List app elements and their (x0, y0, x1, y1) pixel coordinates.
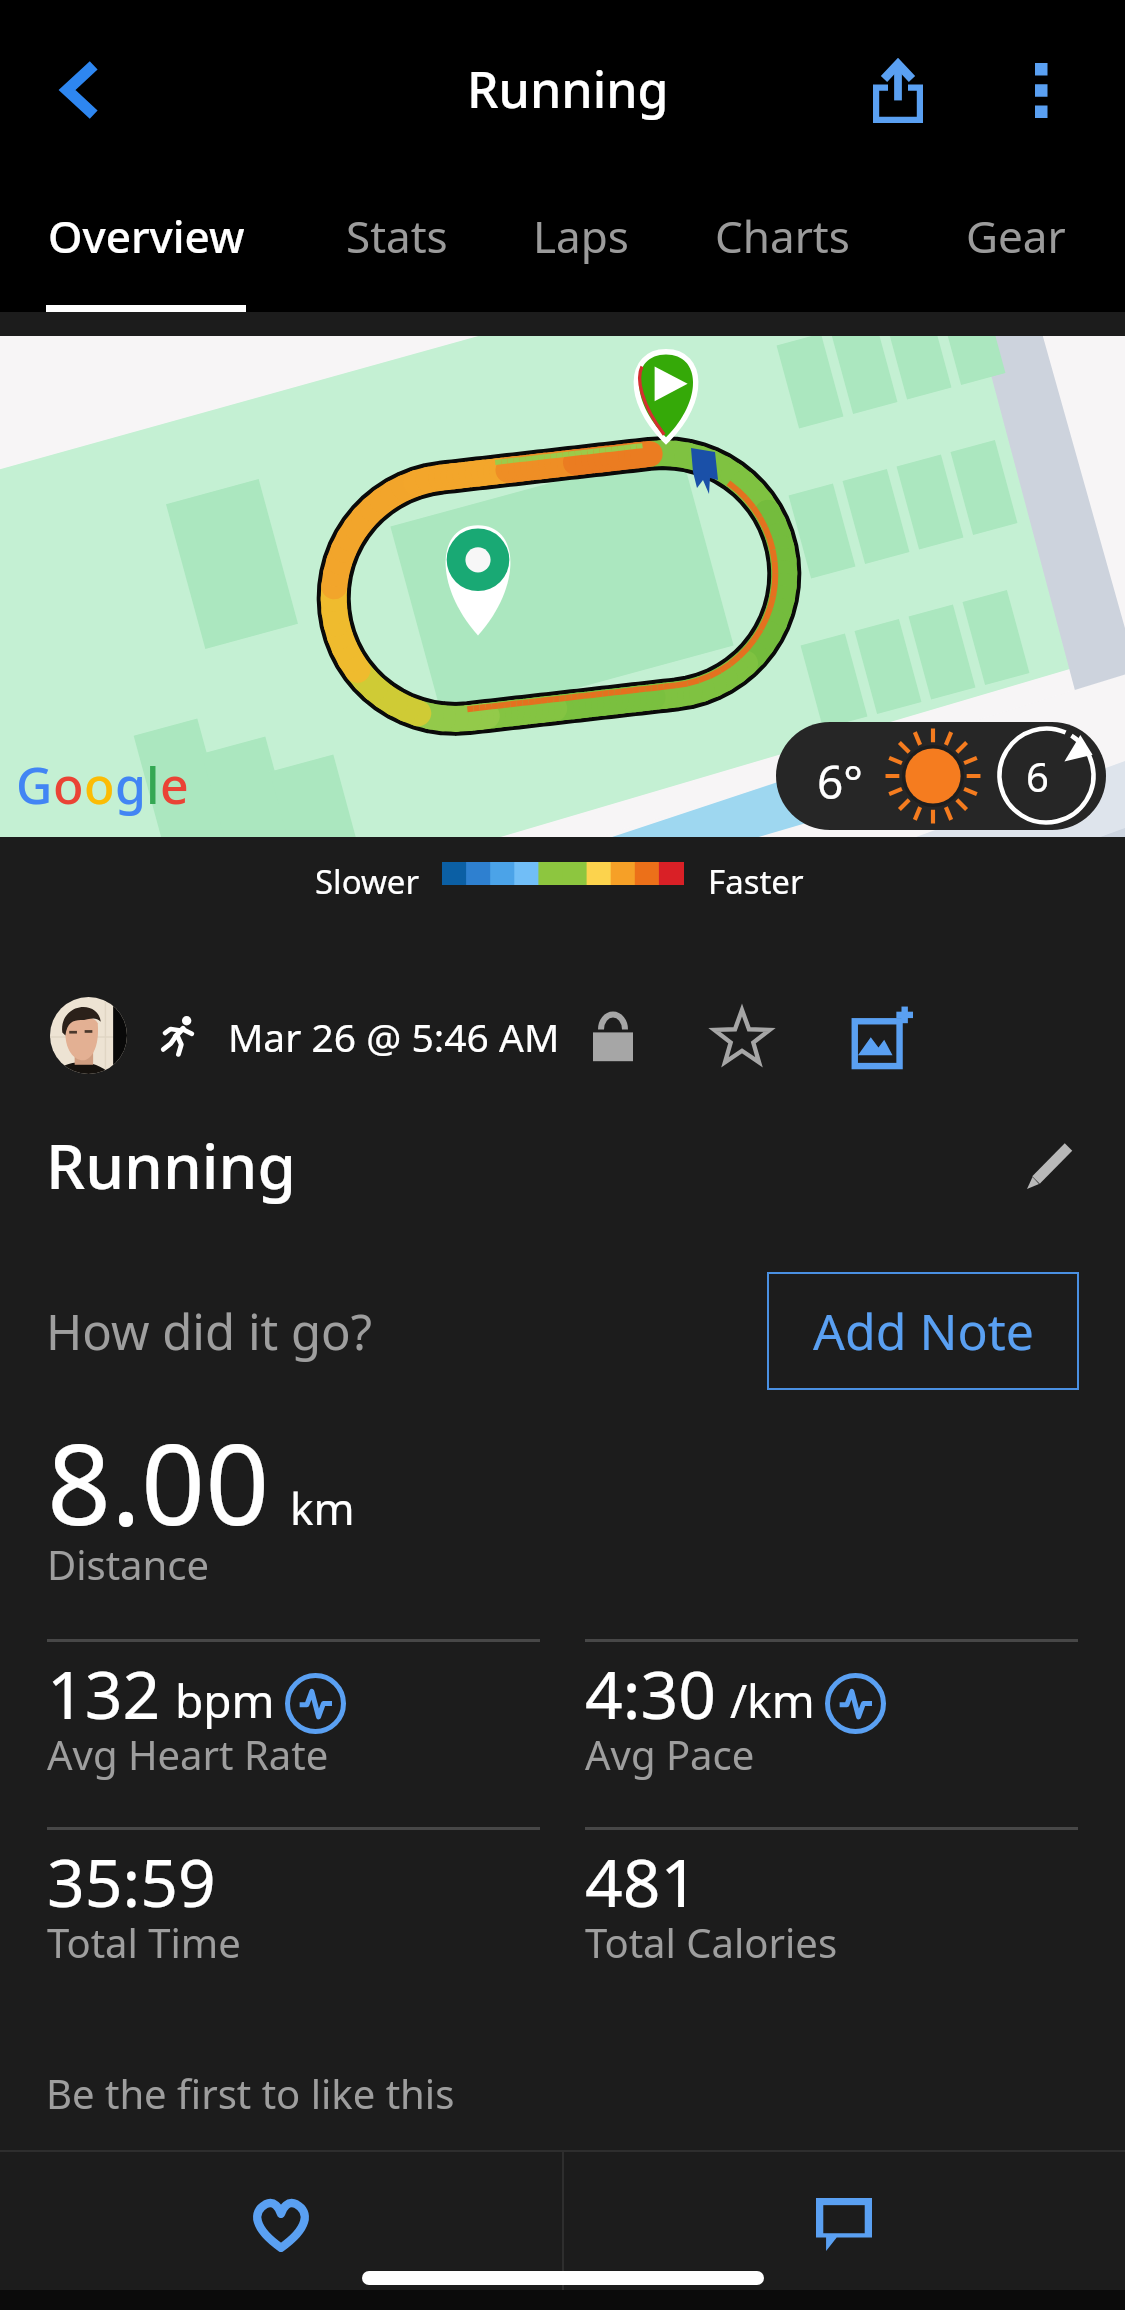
button[interactable]: Laps (532, 182, 630, 312)
button[interactable]: Edit (1011, 1125, 1091, 1205)
button[interactable]: Comment (563, 2152, 1125, 2290)
button[interactable]: 132 (47, 1639, 540, 1799)
staticText: 35:59 (47, 1836, 216, 1926)
button[interactable]: Overview (46, 182, 246, 312)
staticText: 6° (817, 750, 863, 813)
button[interactable]: Charts (714, 182, 851, 312)
staticText: g (115, 751, 146, 819)
staticText: Faster (708, 859, 804, 904)
button[interactable]: More options (981, 30, 1101, 150)
staticText: Gear (966, 206, 1066, 266)
staticText: G (16, 751, 53, 819)
staticText: Overview (48, 206, 245, 266)
staticText: Total Calories (585, 1915, 838, 1969)
button[interactable]: Like (0, 2152, 563, 2290)
staticText: Charts (715, 206, 850, 266)
button[interactable]: 481 (585, 1827, 1078, 1987)
staticText: Running (46, 1123, 296, 1207)
staticText: Mar 26 @ 5:46 AM (228, 1010, 560, 1063)
staticText: Slower (315, 859, 420, 904)
button[interactable]: Share (838, 32, 958, 152)
staticText: 6 (1026, 749, 1049, 803)
button[interactable]: 35:59 (47, 1827, 540, 1987)
button[interactable]: Stats (344, 182, 450, 312)
staticText: o (53, 751, 84, 819)
staticText: 481 (585, 1836, 699, 1926)
staticText: Add Note (813, 1297, 1034, 1365)
staticText: Distance (47, 1537, 210, 1591)
staticText: l (146, 751, 160, 819)
button[interactable]: Weather (776, 722, 1106, 830)
button[interactable]: Profile photo (50, 997, 127, 1074)
staticText: e (160, 751, 189, 819)
staticText: How did it go? (46, 1298, 372, 1365)
button[interactable]: Add Note (767, 1272, 1079, 1390)
staticText: Laps (533, 206, 629, 266)
staticText: 4:30 (585, 1648, 716, 1738)
button[interactable]: Privacy (578, 997, 648, 1075)
staticText: /km (730, 1669, 815, 1732)
button[interactable]: Back (20, 30, 140, 150)
staticText: bpm (175, 1669, 275, 1732)
staticText: Avg Heart Rate (47, 1727, 329, 1781)
button[interactable]: 4:30 (585, 1639, 1078, 1799)
staticText: Stats (346, 206, 448, 266)
button[interactable]: Star (706, 997, 778, 1075)
button[interactable]: Add photo (846, 997, 916, 1075)
staticText: o (84, 751, 115, 819)
staticText: 8.00 (47, 1405, 270, 1558)
staticText: Total Time (47, 1915, 241, 1969)
staticText: 132 (47, 1648, 161, 1738)
staticText: Running (467, 55, 669, 123)
staticText: Be the first to like this (46, 2066, 455, 2120)
button[interactable]: Gear (965, 182, 1067, 312)
staticText: Avg Pace (585, 1727, 755, 1781)
staticText: km (290, 1478, 355, 1538)
